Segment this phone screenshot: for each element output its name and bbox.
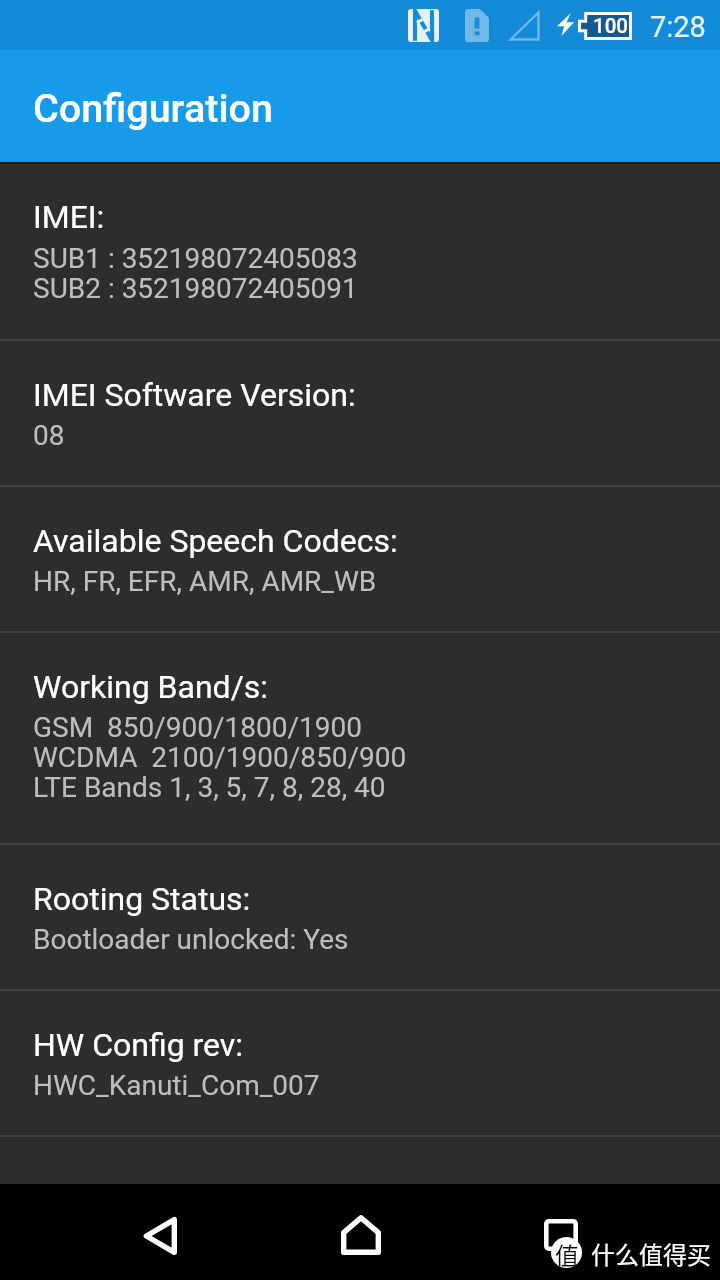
staticText: Working Band/s: xyxy=(33,668,269,706)
button[interactable]: IMEI: xyxy=(0,164,720,339)
staticText: Bootloader unlocked: Yes xyxy=(33,923,349,956)
staticText: SUB1 : 352198072405083 xyxy=(33,242,358,275)
button[interactable]: Back xyxy=(135,1209,185,1262)
staticText: 什么值得买 xyxy=(591,1236,711,1271)
staticText: HWC_Kanuti_Com_007 xyxy=(33,1069,320,1102)
staticText: Rooting Status: xyxy=(33,880,251,918)
button[interactable]: Recent apps xyxy=(538,1210,584,1260)
button[interactable]: HW Config rev: xyxy=(0,991,720,1135)
button[interactable]: Rooting Status: xyxy=(0,845,720,989)
staticText: LTE Bands 1, 3, 5, 7, 8, 28, 40 xyxy=(33,771,386,804)
staticText: 7:28 xyxy=(650,10,706,44)
staticText: WCDMA 2100/1900/850/900 xyxy=(33,741,407,774)
staticText: SUB2 : 352198072405091 xyxy=(33,272,358,305)
staticText: HW Config rev: xyxy=(33,1026,244,1064)
staticText: IMEI: xyxy=(33,198,105,236)
button[interactable]: Available Speech Codecs: xyxy=(0,487,720,631)
staticText: Available Speech Codecs: xyxy=(33,522,398,560)
staticText: GSM 850/900/1800/1900 xyxy=(33,711,362,744)
staticText: HR, FR, EFR, AMR, AMR_WB xyxy=(33,565,377,598)
button[interactable]: IMEI Software Version: xyxy=(0,341,720,485)
staticText: Configuration xyxy=(33,85,273,131)
button[interactable]: Working Band/s: xyxy=(0,633,720,843)
button[interactable]: Home xyxy=(336,1208,386,1261)
staticText: IMEI Software Version: xyxy=(33,376,356,414)
staticText: 08 xyxy=(33,419,65,452)
staticText: 值 xyxy=(555,1237,579,1268)
staticText: 100 xyxy=(593,14,628,38)
